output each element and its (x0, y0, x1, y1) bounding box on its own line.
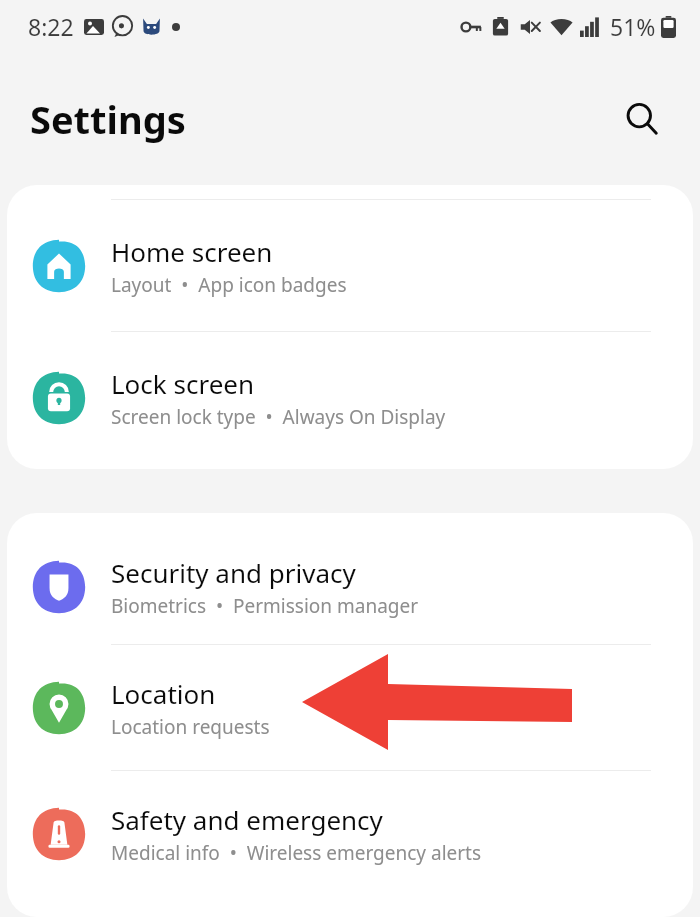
button[interactable]: Location (7, 645, 693, 771)
staticText: 8:22 (28, 11, 74, 42)
staticText: Safety and emergency (111, 802, 383, 837)
staticText: Security and privacy (111, 555, 356, 590)
staticText: Location requests (111, 714, 270, 740)
staticText: Home screen (111, 234, 273, 269)
staticText: Settings (30, 93, 186, 145)
button[interactable]: Safety and emergency (7, 771, 693, 896)
staticText: 51% (610, 11, 656, 42)
staticText: Layout • App icon badges (111, 272, 347, 298)
staticText: Lock screen (111, 366, 255, 401)
staticText: Location (111, 676, 216, 711)
staticText: Medical info • Wireless emergency alerts (111, 840, 482, 866)
button[interactable]: Lock screen (7, 332, 693, 463)
button[interactable]: Home screen (7, 200, 693, 332)
staticText: Screen lock type • Always On Display (111, 404, 446, 430)
button[interactable]: Security and privacy (7, 529, 693, 645)
staticText: Biometrics • Permission manager (111, 593, 419, 619)
button[interactable]: Search (616, 93, 668, 145)
